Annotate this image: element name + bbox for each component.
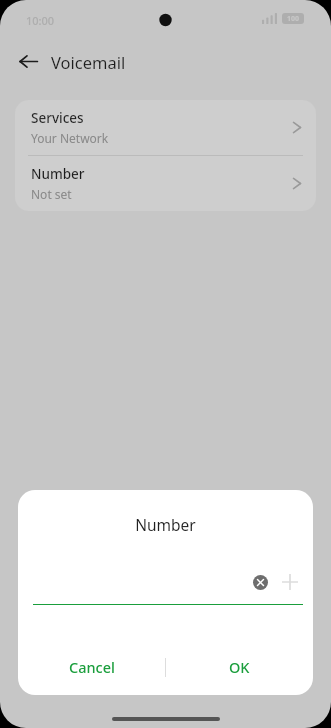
staticText: OK	[229, 657, 250, 677]
staticText: Your Network	[31, 130, 109, 146]
button[interactable]: Add contact	[277, 569, 303, 595]
staticText: Number	[18, 514, 313, 535]
staticText: Number	[31, 165, 85, 183]
button[interactable]: Clear text	[247, 569, 273, 595]
button[interactable]: Number	[15, 156, 316, 211]
staticText: 10:00	[26, 13, 55, 28]
button[interactable]: Back	[12, 45, 44, 77]
staticText: 100	[287, 14, 300, 24]
staticText: Cancel	[69, 657, 115, 677]
staticText: Voicemail	[51, 51, 126, 73]
button[interactable]: OK	[166, 639, 313, 695]
button[interactable]: Cancel	[18, 639, 165, 695]
staticText: Not set	[31, 186, 72, 202]
button[interactable]: Services	[15, 100, 316, 155]
staticText: Services	[31, 109, 84, 127]
